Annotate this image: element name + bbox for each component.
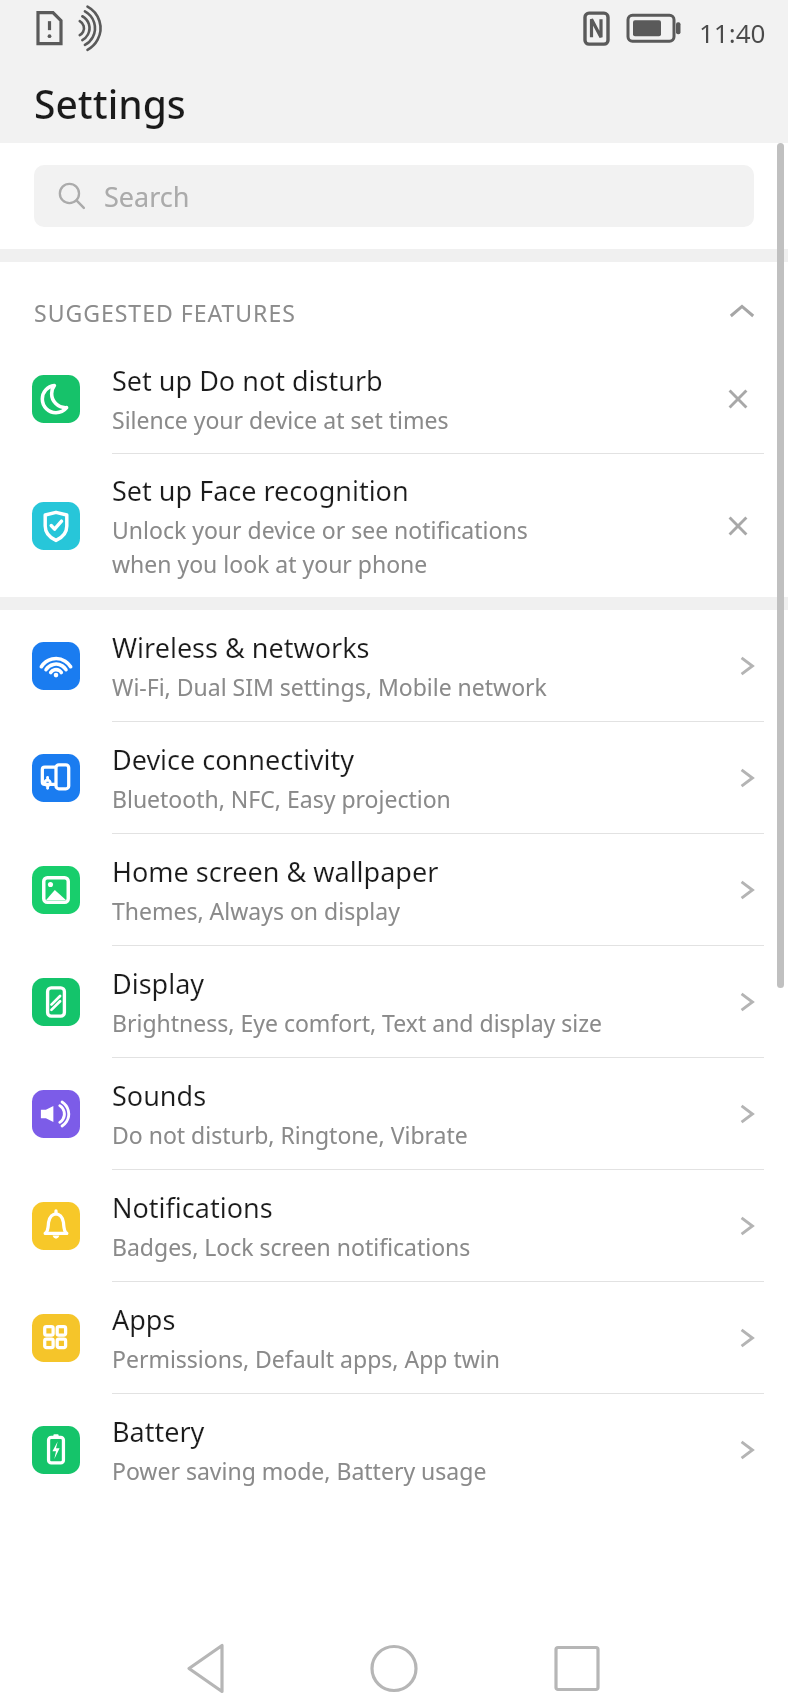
staticText: Home screen & wallpaper (112, 853, 439, 890)
staticText: SUGGESTED FEATURES (34, 297, 722, 328)
button[interactable]: Sounds (0, 1058, 788, 1169)
staticText: 11:40 (699, 15, 766, 50)
staticText: Search (104, 178, 190, 215)
button[interactable]: Set up Do not disturb (0, 344, 788, 453)
button[interactable]: Back (0, 1630, 262, 1707)
staticText: Badges, Lock screen notifications (112, 1231, 471, 1262)
button[interactable]: Device connectivity (0, 722, 788, 833)
staticText: Silence your device at set times (112, 404, 449, 435)
staticText: Brightness, Eye comfort, Text and displa… (112, 1007, 603, 1038)
button[interactable]: SUGGESTED FEATURES (0, 262, 788, 344)
button[interactable]: Home screen & wallpaper (0, 834, 788, 945)
staticText: Set up Face recognition (112, 472, 409, 509)
button[interactable]: Wireless & networks (0, 610, 788, 721)
other: Collapse suggested features (722, 292, 762, 332)
button[interactable]: Search (34, 165, 754, 227)
staticText: Do not disturb, Ringtone, Vibrate (112, 1119, 468, 1150)
staticText: Set up Do not disturb (112, 362, 383, 399)
staticText: when you look at your phone (112, 548, 428, 579)
button[interactable]: Notifications (0, 1170, 788, 1281)
staticText: Themes, Always on display (112, 895, 400, 926)
staticText: Device connectivity (112, 741, 355, 778)
staticText: Wireless & networks (112, 629, 370, 666)
staticText: Permissions, Default apps, App twin (112, 1343, 500, 1374)
button[interactable]: Set up Face recognition (0, 454, 788, 597)
button[interactable]: Display (0, 946, 788, 1057)
button[interactable]: Dismiss Set up Face recognition (712, 500, 764, 552)
staticText: Unlock your device or see notifications (112, 514, 528, 545)
button[interactable]: Recent apps (525, 1630, 788, 1707)
staticText: Settings (34, 77, 186, 130)
staticText: Notifications (112, 1189, 273, 1226)
staticText: Display (112, 965, 205, 1002)
staticText: Sounds (112, 1077, 207, 1114)
staticText: Wi-Fi, Dual SIM settings, Mobile network (112, 671, 547, 702)
staticText: Bluetooth, NFC, Easy projection (112, 783, 451, 814)
staticText: Power saving mode, Battery usage (112, 1455, 487, 1486)
staticText: Battery (112, 1413, 205, 1450)
button[interactable]: Apps (0, 1282, 788, 1393)
button[interactable]: Battery (0, 1394, 788, 1505)
staticText: Apps (112, 1301, 176, 1338)
button[interactable]: Dismiss Set up Do not disturb (712, 373, 764, 425)
button[interactable]: Home (262, 1630, 525, 1707)
